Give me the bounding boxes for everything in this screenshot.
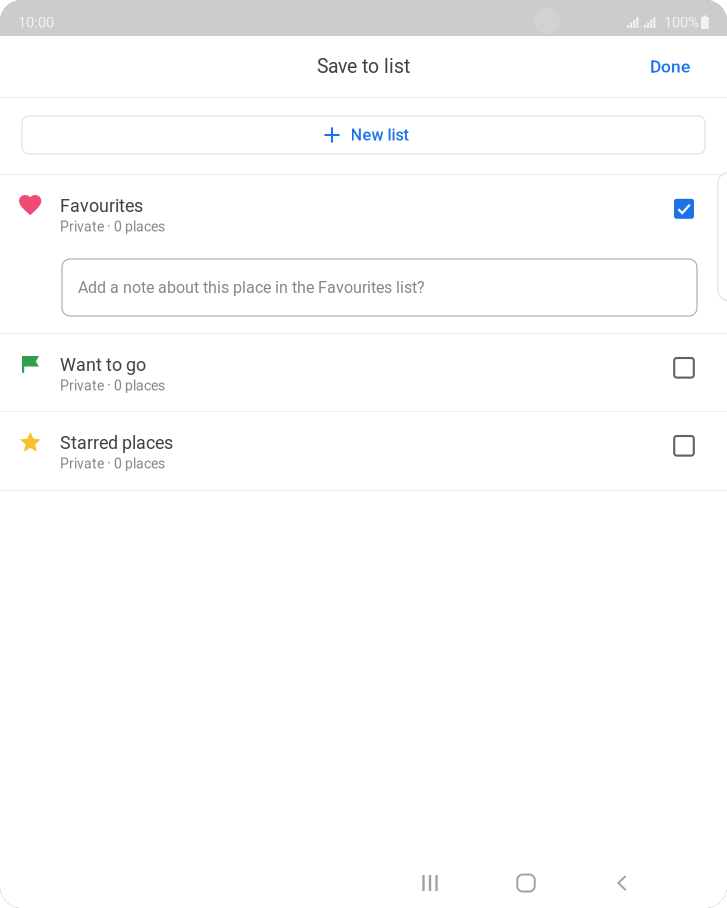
staticText: 10:00 <box>18 14 54 31</box>
button[interactable]: Favourites <box>0 175 727 259</box>
staticText: Done <box>650 56 690 77</box>
staticText: 100% <box>664 14 699 31</box>
staticText: New list <box>351 125 409 145</box>
button[interactable]: New list <box>22 116 705 154</box>
button[interactable]: Done <box>636 44 704 89</box>
button[interactable]: Want to go <box>0 334 727 411</box>
button[interactable]: Home <box>496 858 556 908</box>
button[interactable]: Starred places <box>0 412 727 490</box>
staticText: Private · 0 places <box>60 377 165 394</box>
staticText: Private · 0 places <box>60 218 165 235</box>
staticText: Save to list <box>317 55 410 78</box>
button[interactable]: Add a note about this place in the Favou… <box>62 259 697 316</box>
button[interactable]: Back <box>592 858 652 908</box>
staticText: Favourites <box>60 195 143 216</box>
staticText: Want to go <box>60 354 146 375</box>
staticText: Add a note about this place in the Favou… <box>78 278 425 297</box>
staticText: Starred places <box>60 432 173 453</box>
button[interactable]: Recent apps <box>400 858 460 908</box>
staticText: Private · 0 places <box>60 455 165 472</box>
